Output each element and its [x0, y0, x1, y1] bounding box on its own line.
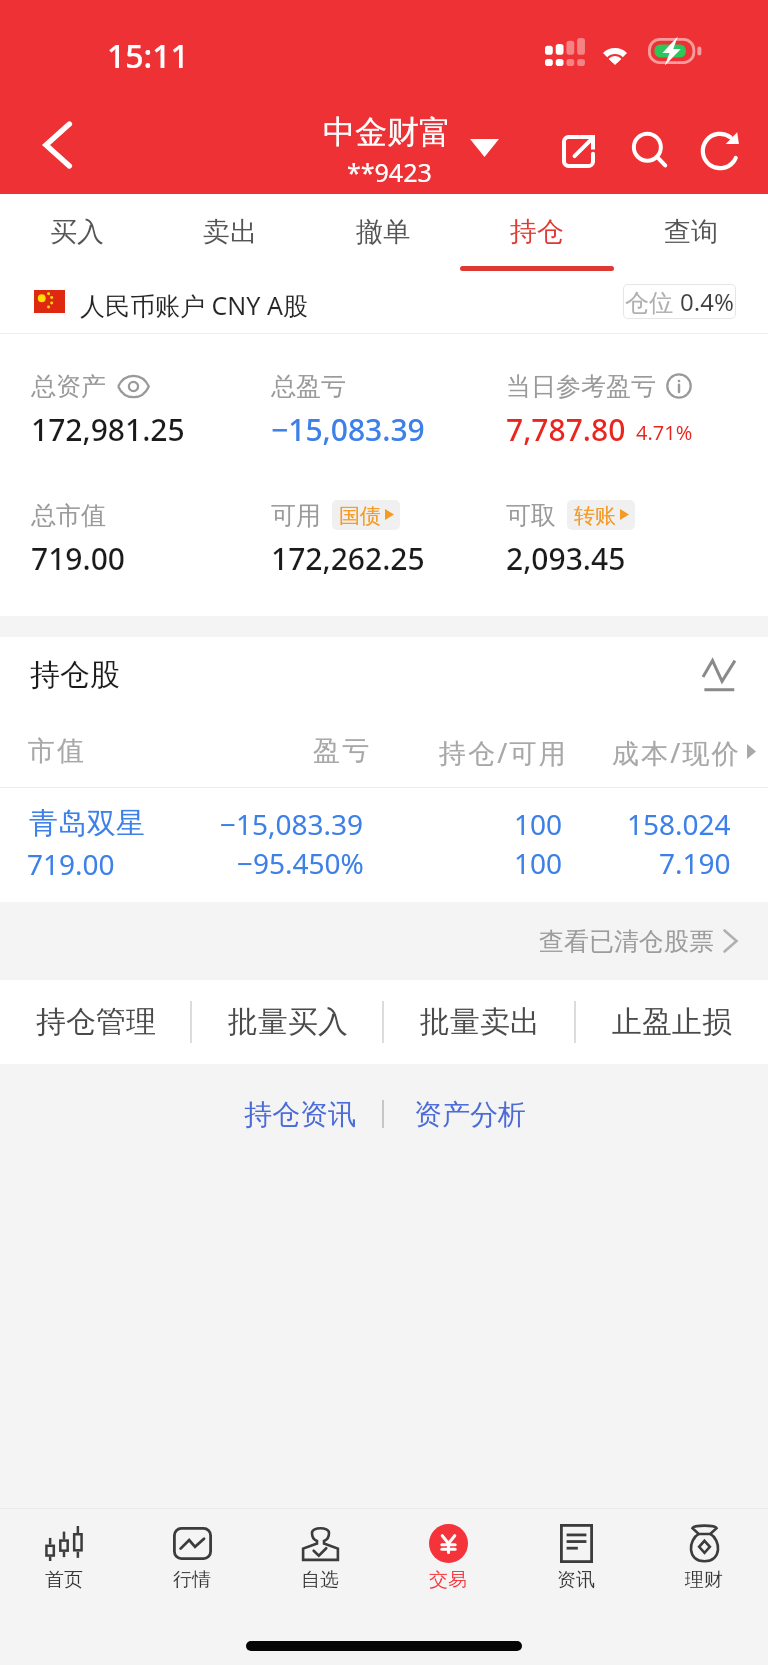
button[interactable]: 持仓管理 [0, 980, 192, 1064]
button[interactable]: Share [544, 111, 612, 191]
button[interactable]: 查询 [614, 194, 768, 271]
button[interactable]: 批量买入 [192, 980, 384, 1064]
staticText: −95.450% [237, 844, 364, 882]
staticText: 可取 [506, 500, 556, 530]
button[interactable]: 持仓 [460, 194, 614, 271]
button[interactable]: 资讯 [512, 1509, 640, 1599]
staticText: 资讯 [557, 1568, 595, 1592]
button[interactable]: 青岛双星 [0, 788, 768, 902]
staticText: 理财 [685, 1568, 723, 1592]
staticText: 青岛双星 [29, 805, 145, 842]
button[interactable]: 撤单 [306, 194, 460, 271]
button[interactable]: 资产分析 [398, 1064, 542, 1164]
staticText: 行情 [173, 1568, 211, 1592]
staticText: 2,093.45 [506, 538, 626, 579]
button[interactable]: 交易 [384, 1509, 512, 1599]
staticText: 158.024 [627, 805, 731, 843]
button[interactable]: 自选 [256, 1509, 384, 1599]
staticText: 持仓股 [30, 656, 120, 694]
button[interactable]: 持仓资讯 [228, 1064, 372, 1164]
staticText: **9423 [347, 155, 432, 189]
staticText: 172,262.25 [271, 538, 425, 579]
button[interactable]: 卖出 [153, 194, 306, 271]
staticText: 成本/现价 [612, 734, 741, 771]
staticText: 可用 [271, 500, 321, 530]
button[interactable]: 国债 [332, 500, 400, 530]
staticText: 持仓管理 [36, 1003, 156, 1041]
button[interactable]: Back [0, 95, 116, 194]
staticText: 7.190 [659, 844, 731, 882]
staticText: 719.00 [27, 845, 115, 883]
staticText: 持仓 [510, 215, 564, 249]
staticText: −15,083.39 [271, 409, 425, 450]
button[interactable]: 买入 [0, 194, 153, 271]
button[interactable]: 止盈止损 [576, 980, 768, 1064]
button[interactable]: 批量卖出 [384, 980, 576, 1064]
staticText: 7,787.80 [506, 409, 626, 450]
staticText: 持仓/可用 [439, 734, 568, 771]
staticText: 总资产 [31, 371, 106, 401]
staticText: 批量卖出 [420, 1003, 540, 1041]
staticText: 持仓资讯 [244, 1097, 356, 1132]
staticText: 国债 [339, 503, 381, 526]
staticText: 撤单 [356, 215, 410, 249]
button[interactable]: Search [616, 111, 684, 191]
staticText: 批量买入 [228, 1003, 348, 1041]
staticText: 首页 [45, 1568, 83, 1592]
staticText: 买入 [50, 215, 104, 249]
button[interactable]: 理财 [640, 1509, 768, 1599]
staticText: 中金财富 [323, 112, 451, 152]
button[interactable]: Chart [690, 645, 750, 705]
staticText: 市值 [28, 734, 87, 768]
staticText: 转账 [574, 503, 616, 526]
staticText: 719.00 [31, 538, 125, 579]
staticText: 总盈亏 [271, 371, 346, 401]
staticText: 172,981.25 [31, 409, 185, 450]
staticText: 仓位 [625, 285, 680, 318]
button[interactable]: 转账 [567, 500, 635, 530]
staticText: 人民币账户 CNY A股 [80, 288, 308, 322]
button[interactable]: Refresh [686, 111, 754, 191]
staticText: 止盈止损 [612, 1003, 732, 1041]
button[interactable]: 仓位 [624, 285, 735, 318]
staticText: 当日参考盈亏 [506, 371, 656, 401]
staticText: 自选 [301, 1568, 339, 1592]
staticText: 4.71% [636, 419, 693, 446]
button[interactable]: 行情 [128, 1509, 256, 1599]
staticText: −15,083.39 [220, 805, 364, 843]
staticText: 100 [514, 844, 563, 882]
staticText: 查看已清仓股票 [539, 926, 714, 957]
staticText: 总市值 [31, 500, 106, 530]
staticText: 0.4% [680, 285, 734, 318]
button[interactable]: 首页 [0, 1509, 128, 1599]
button[interactable]: 查看已清仓股票 [527, 902, 760, 980]
staticText: 查询 [664, 215, 718, 249]
staticText: 15:11 [107, 34, 189, 78]
staticText: 交易 [429, 1568, 467, 1592]
staticText: 卖出 [203, 215, 257, 249]
staticText: 盈亏 [313, 734, 372, 768]
staticText: 资产分析 [414, 1097, 526, 1132]
staticText: 100 [514, 805, 563, 843]
